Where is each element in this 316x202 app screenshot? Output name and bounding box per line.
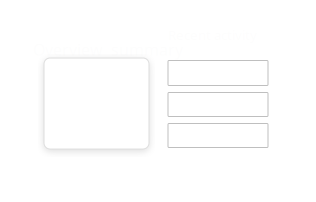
button[interactable]: Overview card — [44, 58, 149, 149]
button[interactable]: Row three — [168, 123, 268, 147]
button[interactable]: Row one — [168, 60, 268, 85]
button[interactable]: Row two — [168, 92, 268, 116]
staticText: Overview summary — [33, 39, 183, 60]
